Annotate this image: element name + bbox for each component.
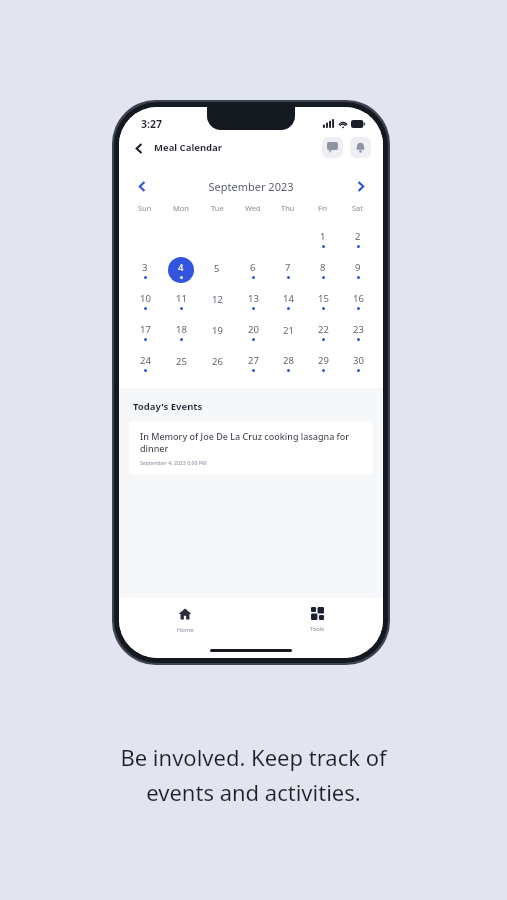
button[interactable]: Next month [351, 177, 369, 195]
button[interactable]: 5 [204, 257, 230, 283]
staticText: 24 [140, 354, 151, 367]
staticText: September 2023 [151, 179, 351, 194]
button[interactable]: 29 [310, 350, 336, 376]
staticText: 12 [212, 293, 223, 306]
button[interactable]: Messages [322, 137, 343, 158]
button[interactable]: In Memory of Joe De La Cruz cooking lasa… [129, 421, 373, 475]
button[interactable]: 7 [275, 257, 301, 283]
button[interactable]: 25 [168, 350, 194, 376]
staticText: 21 [283, 324, 294, 337]
button[interactable]: 24 [132, 350, 158, 376]
staticText: September 4, 2023 6:00 PM [140, 459, 207, 466]
button[interactable]: 30 [345, 350, 371, 376]
staticText: 27 [248, 354, 259, 367]
button[interactable]: Back [131, 140, 147, 156]
button[interactable]: 19 [204, 319, 230, 345]
staticText: Sat [352, 203, 364, 213]
button[interactable]: 26 [204, 350, 230, 376]
staticText: Meal Calendar [154, 141, 223, 154]
staticText: 8 [320, 261, 326, 274]
staticText: 7 [285, 261, 291, 274]
staticText: 20 [248, 323, 259, 336]
staticText: Home [177, 626, 194, 634]
staticText: Mon [173, 203, 189, 213]
staticText: Tue [211, 203, 224, 213]
staticText: 23 [353, 323, 364, 336]
button[interactable]: 11 [168, 288, 194, 314]
button[interactable]: 15 [310, 288, 336, 314]
staticText: 14 [283, 292, 294, 305]
staticText: 30 [353, 354, 364, 367]
button[interactable]: 9 [345, 257, 371, 283]
staticText: 18 [176, 323, 187, 336]
button[interactable]: 21 [275, 319, 301, 345]
staticText: 6 [250, 261, 256, 274]
staticText: 25 [176, 355, 187, 368]
staticText: 3:27 [141, 117, 162, 131]
button[interactable]: 4 [168, 257, 194, 283]
staticText: 5 [214, 262, 220, 275]
button[interactable]: 13 [240, 288, 266, 314]
button[interactable]: 27 [240, 350, 266, 376]
button[interactable]: Previous month [133, 177, 151, 195]
staticText: 4 [178, 261, 184, 274]
staticText: Be involved. Keep track of [120, 742, 387, 772]
staticText: Wed [245, 203, 261, 213]
staticText: Today's Events [133, 400, 203, 413]
button[interactable]: 28 [275, 350, 301, 376]
button[interactable]: 20 [240, 319, 266, 345]
staticText: 22 [318, 323, 329, 336]
staticText: 13 [248, 292, 259, 305]
staticText: Fri [318, 203, 327, 213]
button[interactable]: 10 [132, 288, 158, 314]
staticText: events and activities. [146, 777, 361, 807]
staticText: Tools [310, 625, 325, 633]
staticText: 9 [355, 261, 361, 274]
staticText: 15 [318, 292, 329, 305]
button[interactable]: Home [119, 607, 251, 634]
staticText: 17 [140, 323, 151, 336]
staticText: 29 [318, 354, 329, 367]
staticText: Sun [138, 203, 152, 213]
button[interactable]: 6 [240, 257, 266, 283]
button[interactable]: 1 [310, 226, 336, 252]
button[interactable]: 14 [275, 288, 301, 314]
staticText: 11 [176, 292, 187, 305]
button[interactable]: 18 [168, 319, 194, 345]
staticText: In Memory of Joe De La Cruz cooking lasa… [140, 430, 362, 454]
button[interactable]: 8 [310, 257, 336, 283]
button[interactable]: 23 [345, 319, 371, 345]
button[interactable]: 22 [310, 319, 336, 345]
staticText: 28 [283, 354, 294, 367]
staticText: 19 [212, 324, 223, 337]
button[interactable]: 16 [345, 288, 371, 314]
button[interactable]: 2 [345, 226, 371, 252]
staticText: 1 [320, 230, 326, 243]
button[interactable]: Notifications [350, 137, 371, 158]
staticText: 10 [140, 292, 151, 305]
staticText: 16 [353, 292, 364, 305]
staticText: 2 [355, 230, 361, 243]
staticText: 26 [212, 355, 223, 368]
button[interactable]: 12 [204, 288, 230, 314]
button[interactable]: Tools [251, 607, 383, 633]
button[interactable]: 17 [132, 319, 158, 345]
staticText: Thu [281, 203, 295, 213]
staticText: 3 [142, 261, 148, 274]
button[interactable]: 3 [132, 257, 158, 283]
